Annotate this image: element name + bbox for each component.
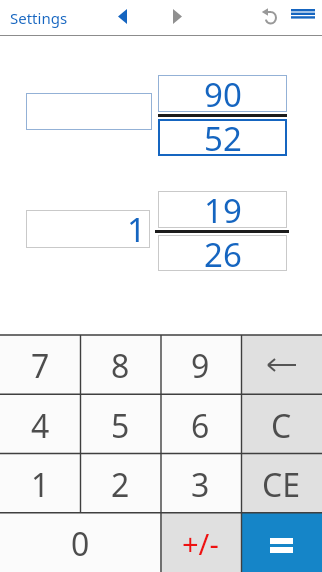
button[interactable]: 8 — [80, 335, 160, 395]
button[interactable]: 6 — [160, 395, 241, 454]
button[interactable]: 52 — [158, 119, 287, 156]
button[interactable]: 0 — [0, 513, 160, 572]
staticText: 8 — [111, 344, 130, 388]
button[interactable]: Settings — [10, 8, 68, 28]
button[interactable]: 2 — [80, 454, 160, 513]
staticText: Settings — [10, 8, 68, 28]
staticText: 1 — [127, 207, 146, 245]
staticText: 3 — [191, 463, 210, 507]
staticText: 2 — [111, 463, 130, 507]
button[interactable]: 26 — [158, 235, 287, 271]
staticText: CE — [262, 463, 301, 507]
button[interactable]: 5 — [80, 395, 160, 454]
staticText: 1 — [31, 463, 50, 507]
button[interactable]: CE — [241, 454, 322, 513]
staticText: 19 — [204, 188, 242, 225]
button[interactable]: 1 — [26, 210, 150, 248]
staticText: 5 — [111, 404, 130, 448]
button[interactable] — [173, 9, 182, 24]
staticText: 26 — [204, 232, 242, 268]
button[interactable]: C — [241, 395, 322, 454]
button[interactable]: 9 — [160, 335, 241, 395]
button[interactable] — [118, 9, 127, 24]
button[interactable]: 3 — [160, 454, 241, 513]
button[interactable] — [261, 8, 277, 25]
button[interactable] — [26, 93, 152, 130]
staticText: 9 — [191, 344, 210, 388]
button[interactable] — [241, 335, 322, 395]
button[interactable]: 1 — [0, 454, 80, 513]
button[interactable]: 4 — [0, 395, 80, 454]
staticText: +/- — [182, 524, 219, 563]
staticText: 4 — [31, 404, 50, 448]
staticText: 90 — [204, 72, 242, 109]
staticText: 7 — [31, 344, 50, 388]
staticText: 0 — [71, 522, 90, 566]
staticText: C — [271, 404, 292, 448]
button[interactable]: 19 — [158, 191, 287, 228]
button[interactable]: 7 — [0, 335, 80, 395]
staticText: 6 — [191, 404, 210, 448]
button[interactable] — [241, 513, 322, 572]
button[interactable]: +/- — [160, 513, 241, 572]
button[interactable] — [291, 9, 315, 20]
staticText: 52 — [204, 116, 242, 153]
button[interactable]: 90 — [158, 75, 287, 112]
